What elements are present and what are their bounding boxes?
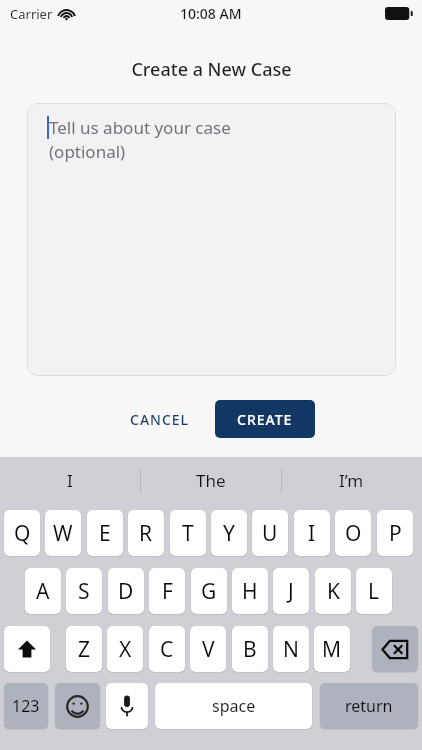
staticText: A: [36, 577, 50, 606]
staticText: Y: [223, 519, 235, 548]
button[interactable]: 123: [4, 683, 48, 729]
button[interactable]: I: [294, 510, 330, 556]
button[interactable]: I: [0, 457, 140, 504]
staticText: X: [119, 635, 132, 664]
button[interactable]: F: [149, 568, 185, 614]
staticText: M: [322, 635, 342, 664]
staticText: CANCEL: [130, 410, 190, 429]
button[interactable]: C: [149, 626, 185, 672]
staticText: R: [139, 519, 153, 548]
staticText: Carrier: [10, 5, 53, 23]
staticText: I: [67, 469, 73, 492]
button[interactable]: A: [25, 568, 61, 614]
button[interactable]: S: [66, 568, 102, 614]
staticText: B: [243, 635, 257, 664]
button[interactable]: The: [140, 457, 281, 504]
staticText: space: [212, 695, 256, 717]
button[interactable]: space: [155, 683, 312, 729]
button[interactable]: L: [356, 568, 392, 614]
staticText: Tell us about your case (optional): [49, 116, 231, 163]
button[interactable]: G: [191, 568, 227, 614]
button[interactable]: B: [232, 626, 268, 672]
button[interactable]: K: [315, 568, 351, 614]
button[interactable]: H: [232, 568, 268, 614]
button[interactable]: T: [170, 510, 206, 556]
staticText: P: [389, 519, 402, 548]
button[interactable]: Tell us about your case (optional): [27, 103, 396, 376]
staticText: CREATE: [237, 410, 293, 429]
button[interactable]: N: [273, 626, 309, 672]
staticText: I’m: [339, 469, 364, 492]
button[interactable]: X: [107, 626, 143, 672]
button[interactable]: Q: [4, 510, 40, 556]
staticText: G: [201, 577, 217, 606]
staticText: I: [308, 519, 316, 548]
staticText: S: [78, 577, 90, 606]
staticText: U: [262, 519, 278, 548]
staticText: The: [196, 469, 226, 492]
button[interactable]: Backspace: [372, 626, 418, 672]
staticText: 10:08 AM: [180, 4, 242, 23]
button[interactable]: Emoji: [55, 683, 100, 729]
staticText: Q: [14, 519, 31, 548]
staticText: W: [53, 519, 73, 548]
staticText: N: [283, 635, 299, 664]
button[interactable]: V: [190, 626, 226, 672]
button[interactable]: CREATE: [215, 400, 315, 438]
staticText: K: [327, 577, 340, 606]
staticText: Create a New Case: [131, 57, 292, 82]
button[interactable]: E: [87, 510, 123, 556]
button[interactable]: Y: [211, 510, 247, 556]
staticText: C: [160, 635, 174, 664]
staticText: H: [242, 577, 258, 606]
button[interactable]: O: [335, 510, 371, 556]
button[interactable]: R: [128, 510, 164, 556]
staticText: L: [368, 577, 380, 606]
button[interactable]: U: [252, 510, 288, 556]
staticText: E: [99, 519, 111, 548]
button[interactable]: Dictate: [106, 683, 148, 729]
staticText: D: [118, 577, 134, 606]
button[interactable]: W: [45, 510, 81, 556]
button[interactable]: Shift: [4, 626, 50, 672]
staticText: Z: [78, 635, 91, 664]
button[interactable]: return: [320, 683, 418, 729]
button[interactable]: M: [314, 626, 350, 672]
staticText: V: [202, 635, 215, 664]
staticText: F: [162, 577, 173, 606]
button[interactable]: P: [377, 510, 413, 556]
staticText: 123: [12, 695, 40, 717]
staticText: T: [182, 519, 194, 548]
button[interactable]: Z: [66, 626, 102, 672]
button[interactable]: I’m: [281, 457, 422, 504]
staticText: O: [345, 519, 362, 548]
staticText: return: [345, 695, 393, 717]
staticText: J: [288, 577, 294, 606]
button[interactable]: J: [273, 568, 309, 614]
button[interactable]: D: [108, 568, 144, 614]
button[interactable]: CANCEL: [113, 403, 207, 435]
